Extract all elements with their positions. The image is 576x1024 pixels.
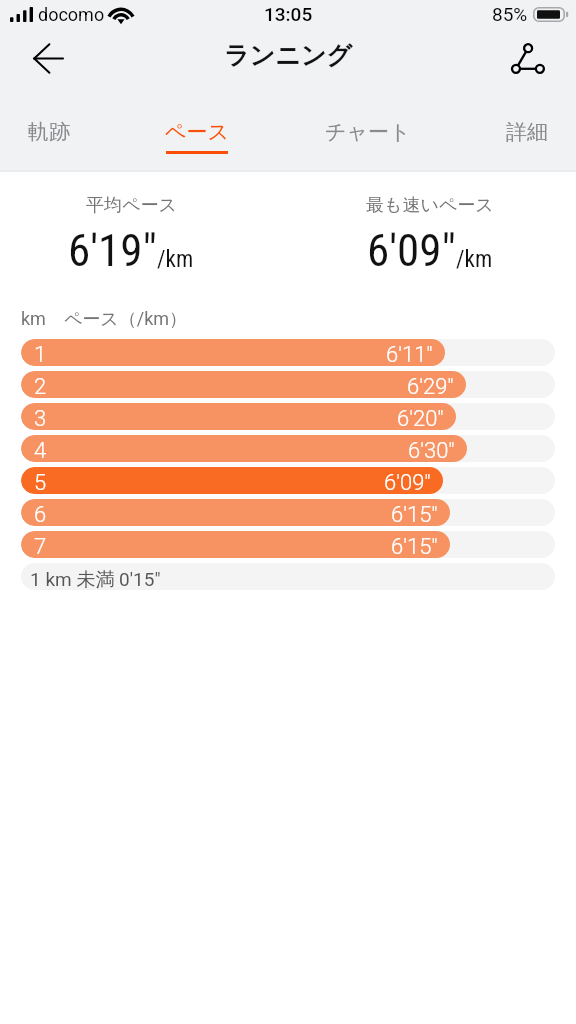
staticText: /km: [456, 246, 493, 273]
staticText: 3: [34, 406, 47, 430]
staticText: 6'15": [391, 502, 438, 526]
button[interactable]: 詳細: [506, 110, 548, 151]
staticText: 5: [34, 470, 47, 494]
button[interactable]: 3: [21, 403, 555, 430]
staticText: 最も速いペース: [366, 194, 494, 217]
button[interactable]: 7: [21, 531, 555, 558]
button[interactable]: チャート: [325, 110, 411, 151]
button[interactable]: 1 km 未満 0'15": [21, 563, 555, 590]
staticText: docomo: [38, 4, 105, 25]
staticText: ランニング: [224, 40, 352, 71]
staticText: ペース: [165, 119, 229, 145]
staticText: 1: [34, 342, 47, 366]
staticText: 6'15": [391, 534, 438, 558]
staticText: 2: [34, 374, 47, 398]
staticText: 6'29": [407, 374, 454, 398]
staticText: 平均ペース: [86, 194, 177, 217]
button[interactable]: 4: [21, 435, 555, 462]
staticText: 6'11": [386, 342, 433, 366]
button[interactable]: 5: [21, 467, 555, 494]
staticText: 7: [34, 534, 47, 558]
staticText: km ペース（/km）: [21, 308, 188, 331]
button[interactable]: 6: [21, 499, 555, 526]
staticText: /km: [157, 246, 194, 273]
staticText: 13:05: [264, 3, 313, 25]
staticText: 1 km 未満 0'15": [30, 568, 161, 590]
staticText: 85%: [492, 3, 528, 25]
button[interactable]: 軌跡: [28, 110, 70, 151]
button[interactable]: ペース: [165, 110, 229, 154]
staticText: チャート: [325, 119, 411, 145]
button[interactable]: Back: [19, 29, 77, 87]
button[interactable]: Share: [500, 30, 556, 86]
staticText: 6'30": [408, 438, 455, 462]
staticText: 詳細: [506, 119, 548, 145]
staticText: 6'20": [397, 406, 444, 430]
staticText: 6'09": [384, 470, 431, 494]
staticText: 4: [34, 438, 47, 462]
staticText: 6'19": [68, 224, 157, 272]
button[interactable]: 2: [21, 371, 555, 398]
staticText: 6: [34, 502, 47, 526]
button[interactable]: 1: [21, 339, 555, 366]
staticText: 6'09": [367, 224, 456, 272]
staticText: 軌跡: [28, 119, 70, 145]
